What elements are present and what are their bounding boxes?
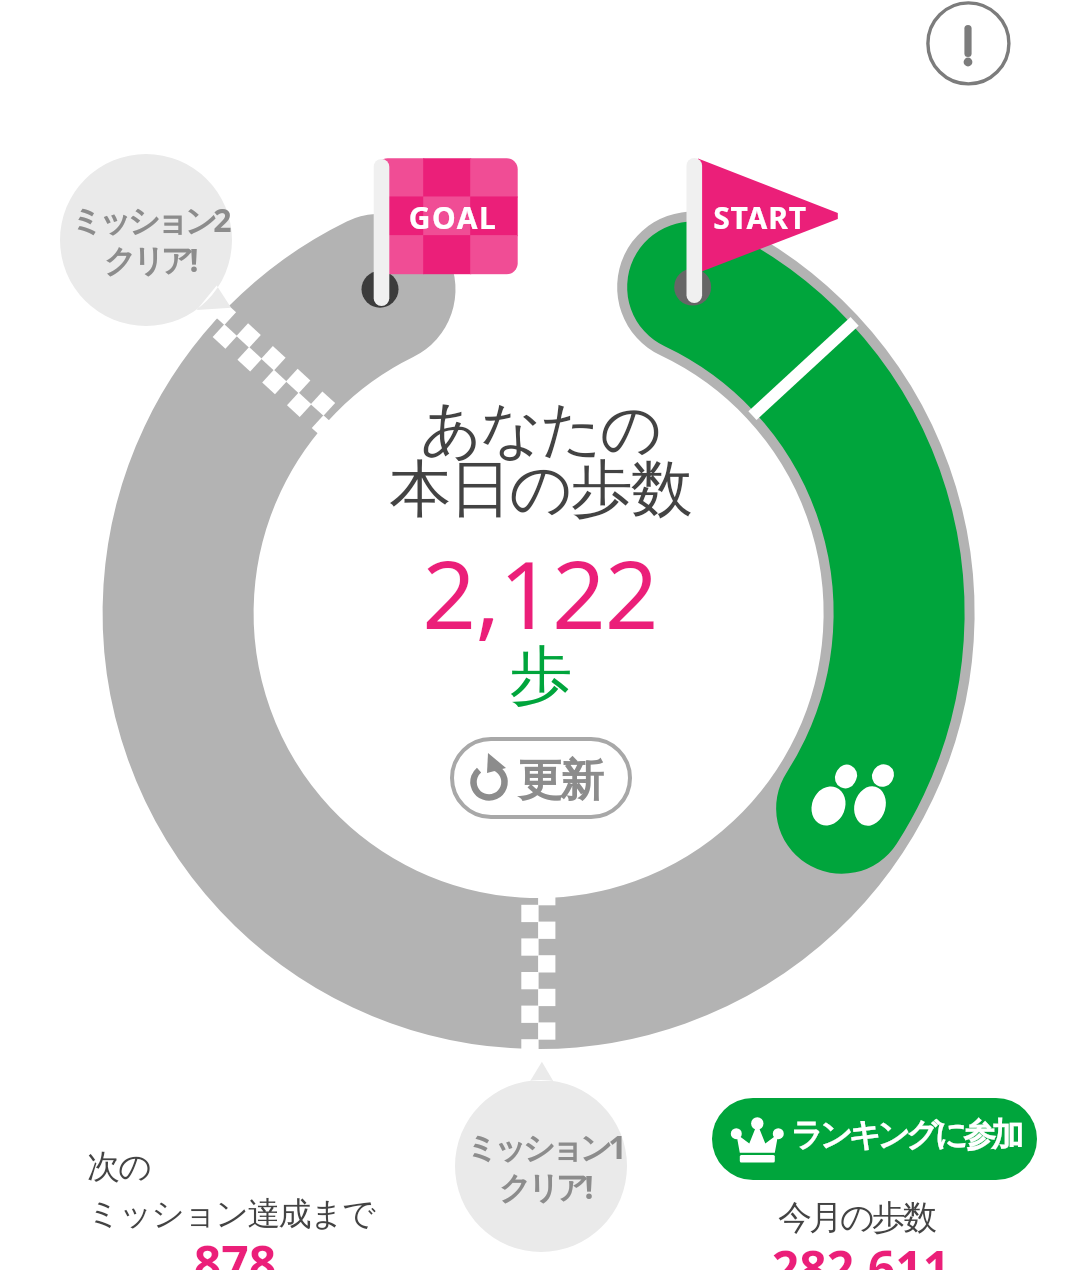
staticText: ミッション1 クリア! [94,1125,994,1259]
staticText: 878 [0,1230,685,1270]
staticText: 本日の歩数 [90,450,990,656]
button[interactable] [712,1098,1037,1180]
staticText: 282,611 [411,1235,1080,1270]
button[interactable] [452,739,630,817]
staticText: ミッション2 クリア! [0,198,599,332]
staticText: ランキングに参加 [455,1115,1080,1237]
staticText: 歩 [90,636,990,848]
staticText: 更新 [110,753,1010,911]
staticText: 次の ミッション達成まで [87,1146,987,1270]
staticText: 2,122 [90,529,990,843]
staticText: GOAL [3,197,903,313]
staticText: あなたの [90,391,990,597]
staticText: START [310,197,1080,313]
button[interactable]: Information [925,3,1013,91]
staticText: 今月の歩数 [406,1196,1080,1270]
